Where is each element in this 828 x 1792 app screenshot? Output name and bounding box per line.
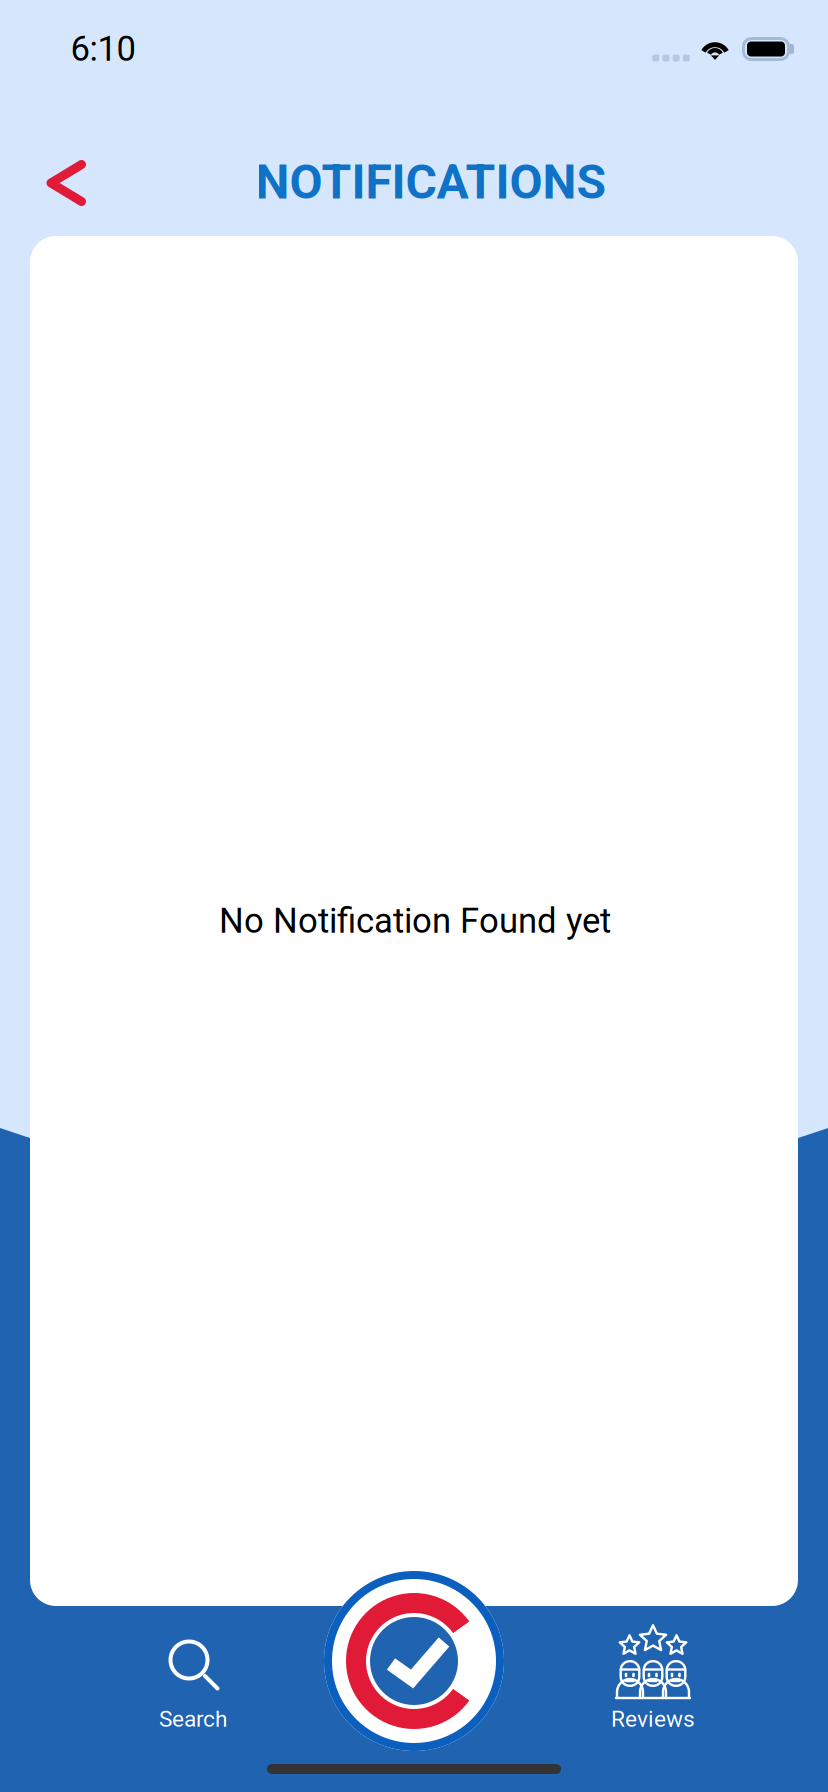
button[interactable]: Reviews [553, 1597, 753, 1727]
button[interactable]: Search [93, 1597, 293, 1727]
staticText: Reviews [611, 1706, 695, 1732]
button[interactable]: Home [324, 1571, 504, 1751]
staticText: Search [159, 1706, 227, 1732]
button[interactable]: Back [18, 135, 114, 231]
staticText: 6:10 [70, 29, 135, 69]
staticText: NOTIFICATIONS [255, 154, 606, 210]
staticText: No Notification Found yet [219, 901, 611, 941]
